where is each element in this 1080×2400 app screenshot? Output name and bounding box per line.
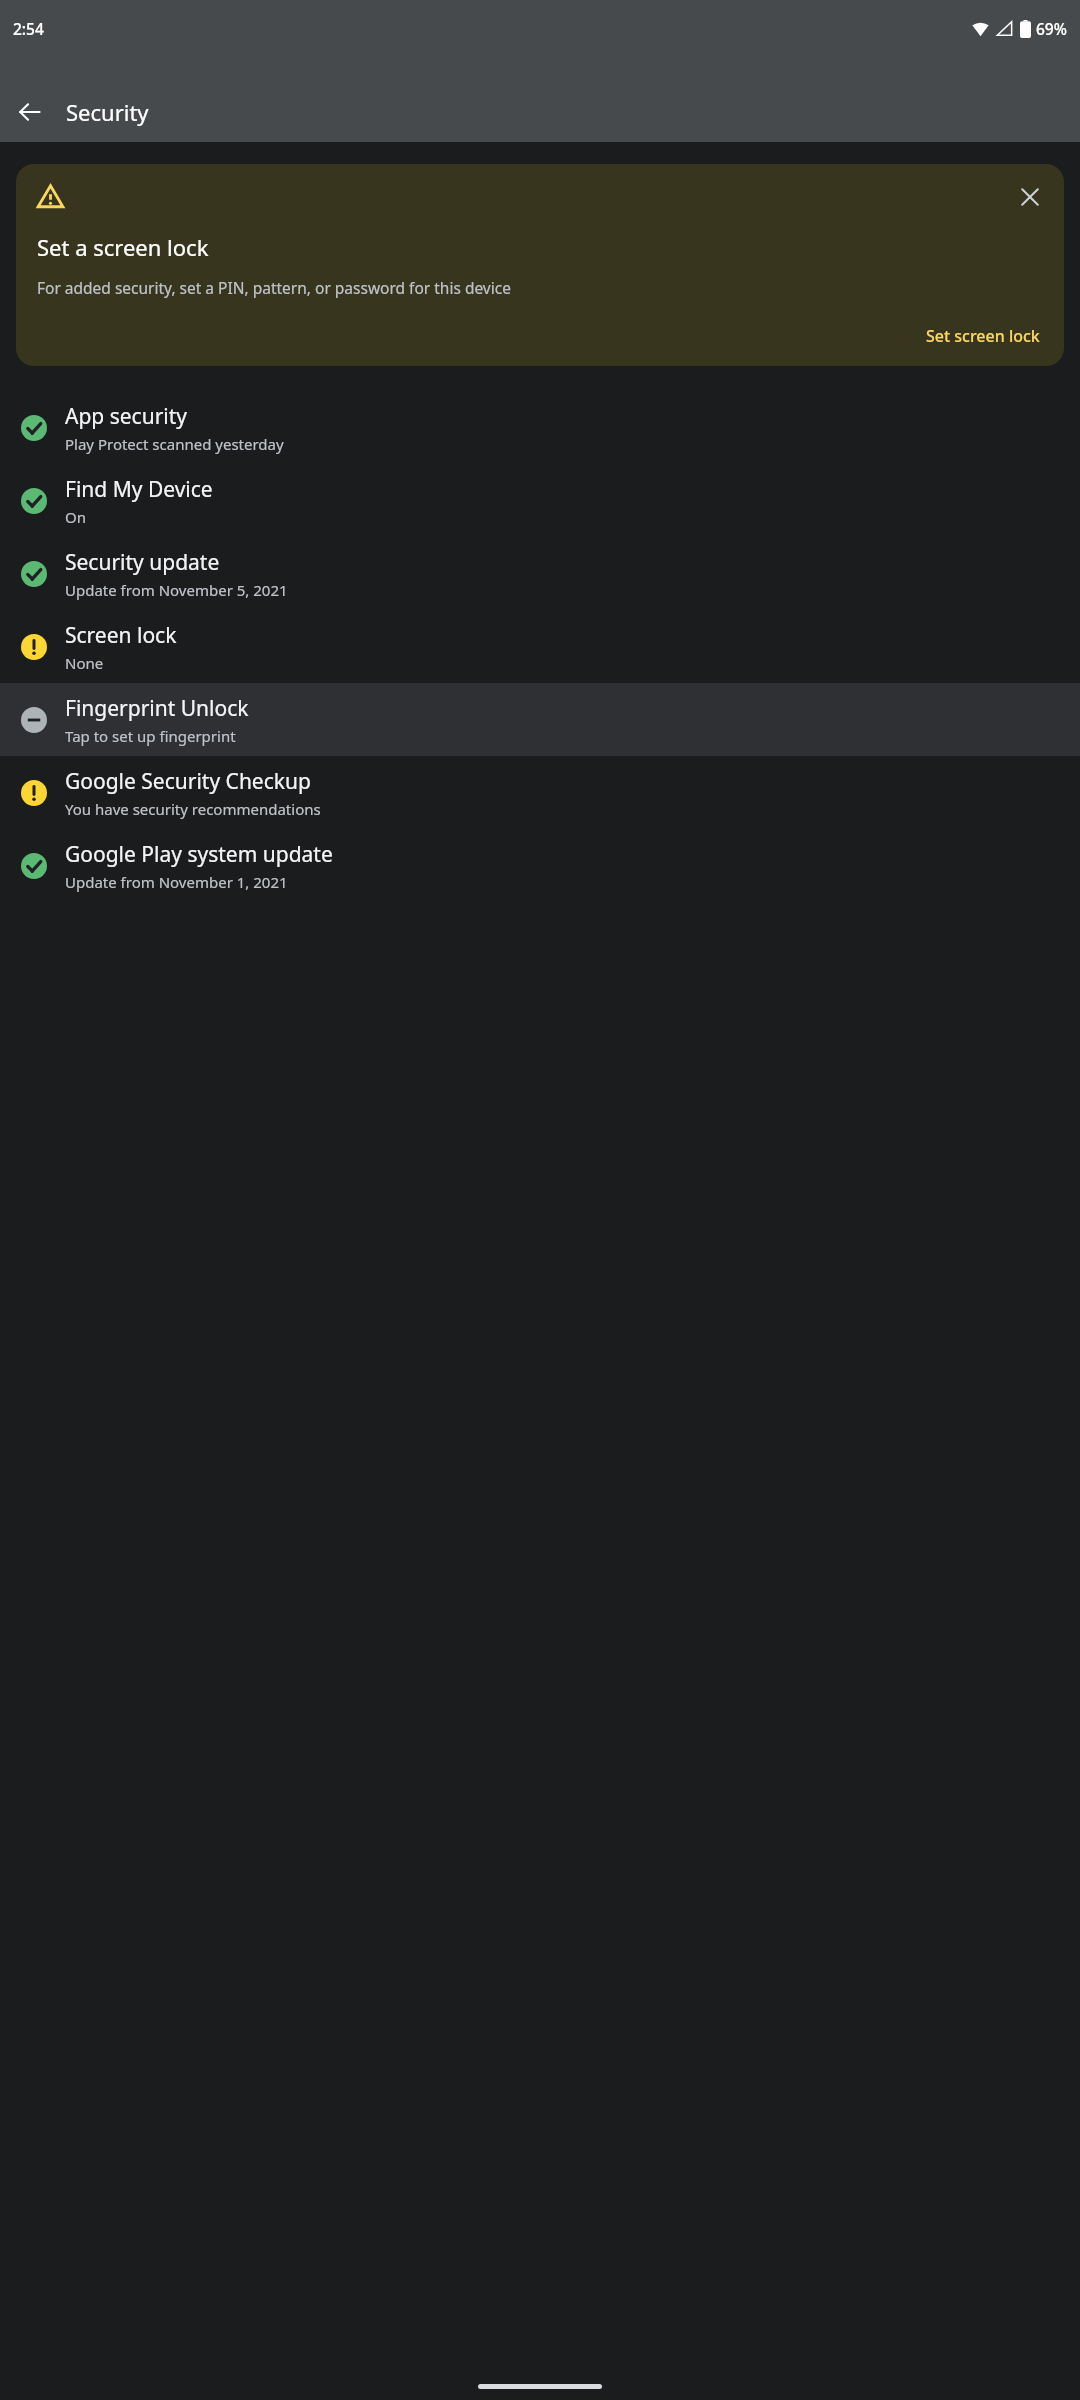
button[interactable]: App security <box>0 391 1080 464</box>
staticText: Set a screen lock <box>37 232 209 262</box>
staticText: You have security recommendations <box>65 799 321 819</box>
staticText: For added security, set a PIN, pattern, … <box>37 277 511 298</box>
staticText: Security update <box>65 548 220 577</box>
button[interactable]: Fingerprint Unlock <box>0 683 1080 756</box>
button[interactable]: Security update <box>0 537 1080 610</box>
staticText: Play Protect scanned yesterday <box>65 434 284 454</box>
button[interactable]: Find My Device <box>0 464 1080 537</box>
staticText: 69% <box>1036 18 1067 39</box>
staticText: Find My Device <box>65 475 213 504</box>
staticText: Screen lock <box>65 621 177 650</box>
button[interactable]: Dismiss <box>1010 177 1050 217</box>
staticText: Google Security Checkup <box>65 767 311 796</box>
button[interactable]: Set screen lock <box>916 319 1050 353</box>
button[interactable]: Google Play system update <box>0 829 1080 902</box>
staticText: Tap to set up fingerprint <box>65 726 236 746</box>
button[interactable]: Back <box>6 88 54 136</box>
button[interactable]: Dismiss <box>16 164 1064 366</box>
staticText: Update from November 5, 2021 <box>65 580 288 600</box>
staticText: On <box>65 507 86 527</box>
staticText: 2:54 <box>13 18 44 39</box>
staticText: Security <box>66 97 149 127</box>
button[interactable]: Google Security Checkup <box>0 756 1080 829</box>
staticText: Fingerprint Unlock <box>65 694 249 723</box>
staticText: None <box>65 653 104 673</box>
button[interactable]: Screen lock <box>0 610 1080 683</box>
staticText: Update from November 1, 2021 <box>65 872 288 892</box>
staticText: Set screen lock <box>926 325 1040 347</box>
staticText: Google Play system update <box>65 840 333 869</box>
staticText: App security <box>65 402 188 431</box>
